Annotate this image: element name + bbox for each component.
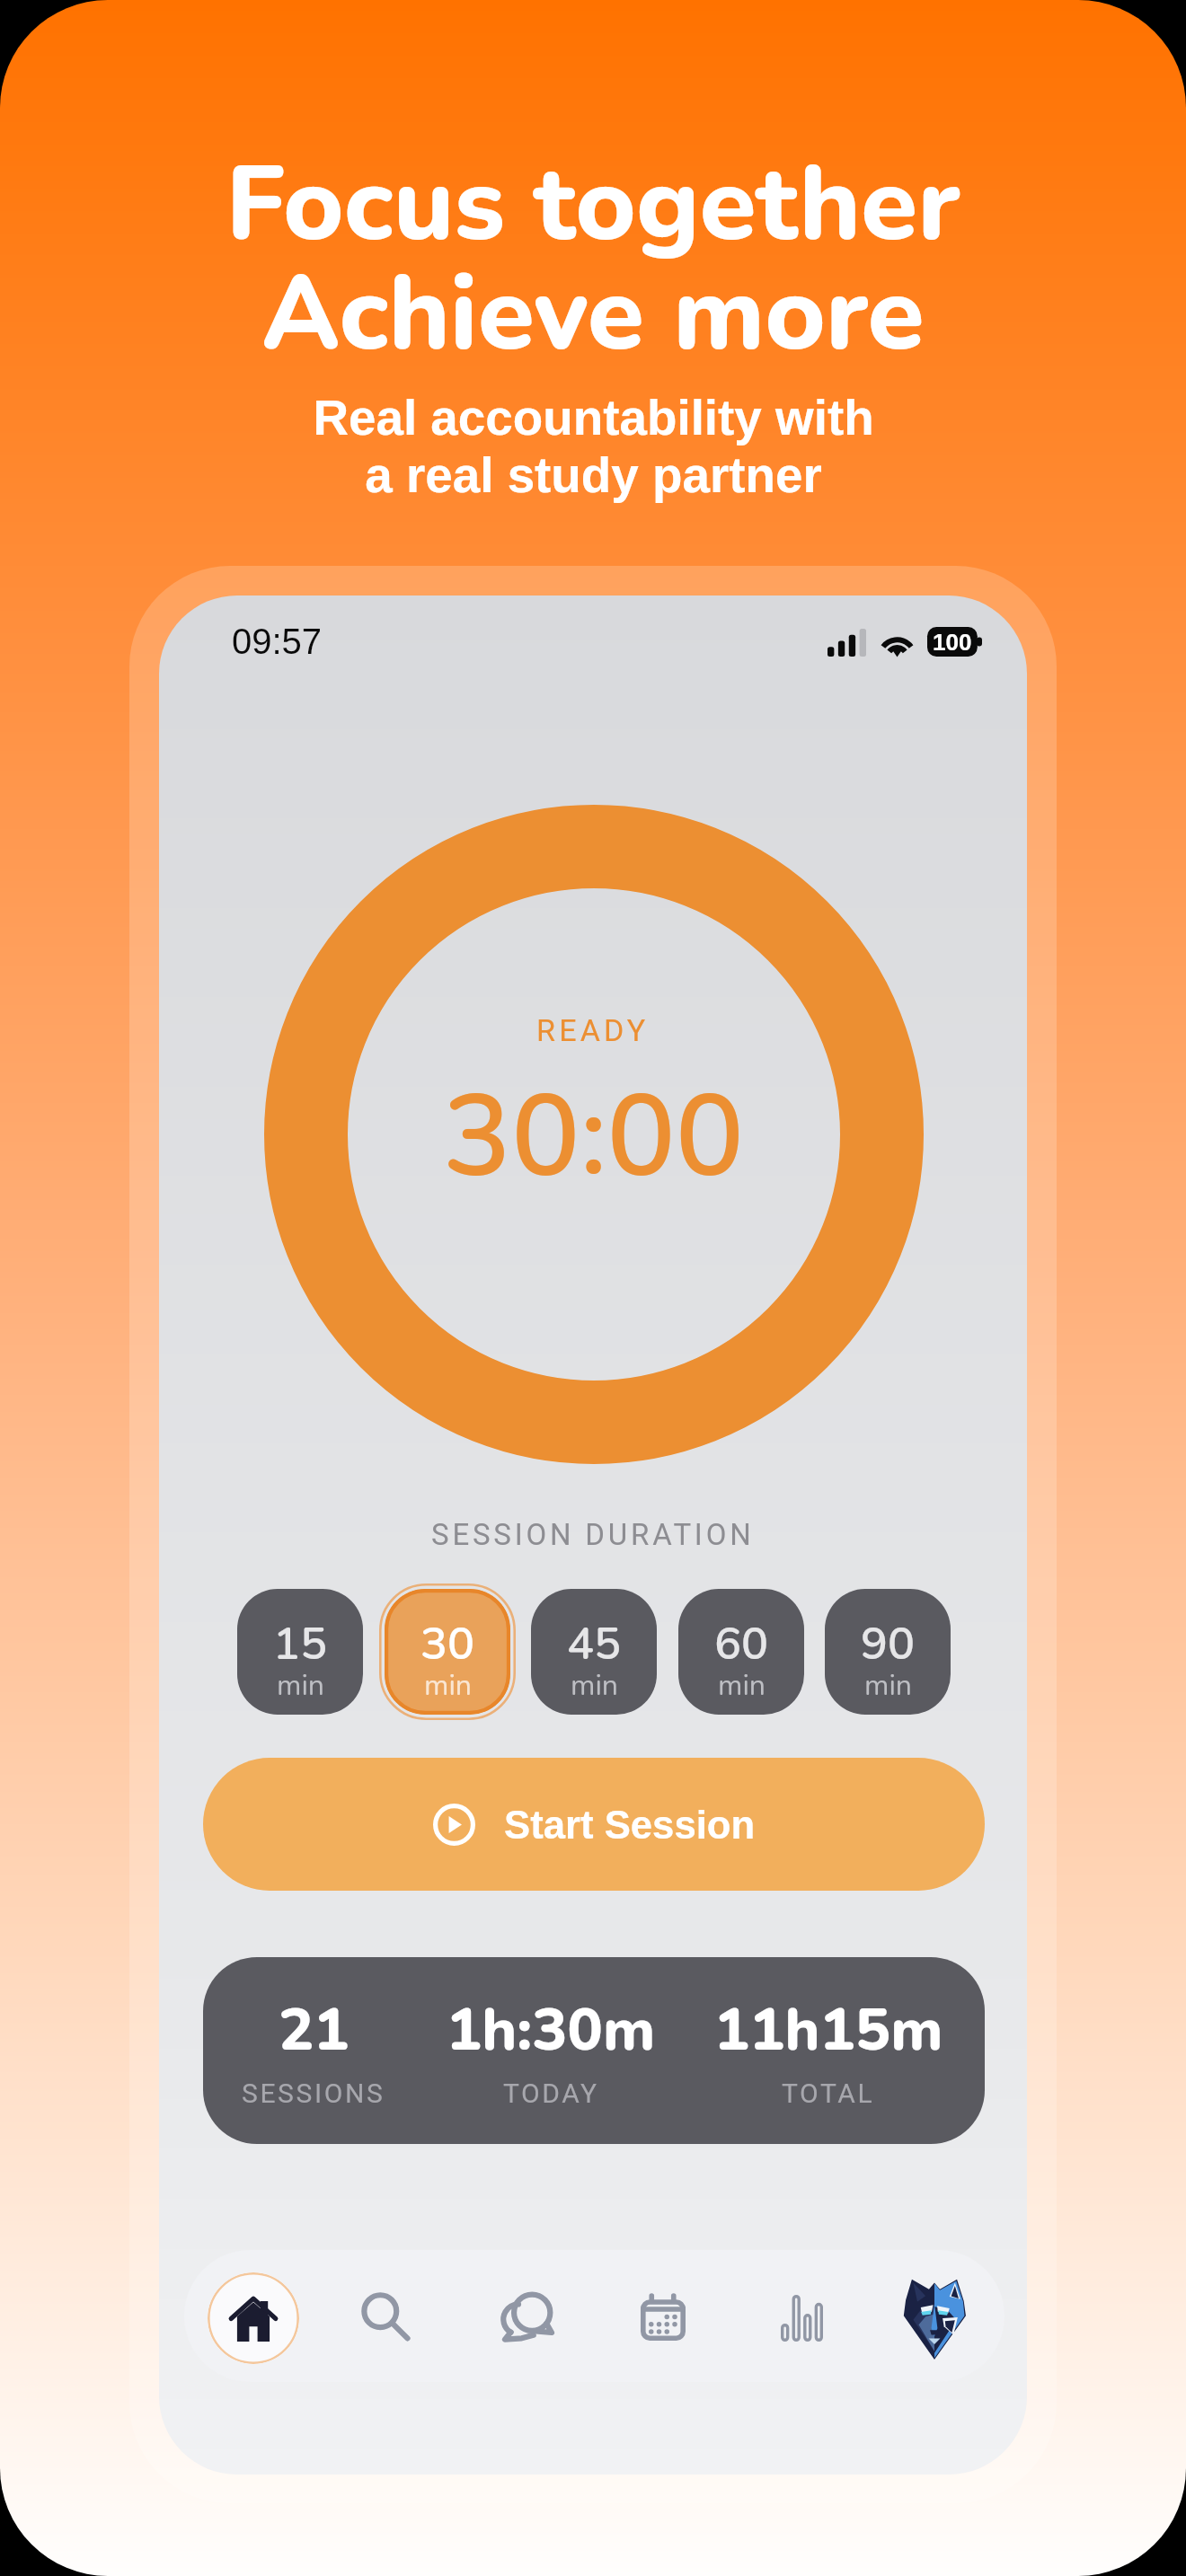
staticText: 30 xyxy=(420,1613,474,1674)
staticText: 11h15m xyxy=(714,1990,943,2070)
staticText: 21 xyxy=(279,1990,350,2070)
button[interactable]: 60 xyxy=(678,1589,804,1715)
staticText: min xyxy=(424,1666,472,1706)
staticText: min xyxy=(864,1666,912,1706)
other: Status bar xyxy=(232,622,323,662)
staticText: min xyxy=(718,1666,766,1706)
button[interactable]: Search xyxy=(341,2272,432,2364)
staticText: 09:57 xyxy=(232,622,323,662)
button[interactable]: Messages xyxy=(481,2272,572,2364)
staticText: Real accountability with a real study pa… xyxy=(313,390,874,502)
button[interactable]: 30 xyxy=(385,1589,510,1715)
button[interactable] xyxy=(203,1957,985,2144)
button[interactable]: Start Session xyxy=(203,1758,985,1891)
button[interactable]: 90 xyxy=(825,1589,951,1715)
staticText: 15 xyxy=(273,1613,327,1674)
staticText: 30:00 xyxy=(443,1059,744,1214)
button[interactable]: Calendar xyxy=(617,2272,709,2364)
staticText: READY xyxy=(536,1012,650,1048)
button[interactable]: Home xyxy=(208,2272,299,2364)
staticText: 100 xyxy=(933,629,972,655)
staticText: 60 xyxy=(714,1613,768,1674)
staticText: 90 xyxy=(861,1613,915,1674)
staticText: 1h:30m xyxy=(447,1990,656,2070)
staticText: TODAY xyxy=(503,2078,599,2109)
staticText: SESSIONS xyxy=(242,2078,385,2109)
button[interactable]: Stats xyxy=(756,2272,847,2364)
staticText: 45 xyxy=(567,1613,621,1674)
staticText: TOTAL xyxy=(782,2078,875,2109)
button[interactable]: Profile xyxy=(889,2272,980,2364)
staticText: min xyxy=(571,1666,618,1706)
staticText: SESSION DURATION xyxy=(431,1517,755,1552)
staticText: Start Session xyxy=(504,1803,756,1847)
button[interactable]: 45 xyxy=(531,1589,657,1715)
button[interactable]: 15 xyxy=(237,1589,363,1715)
staticText: min xyxy=(277,1666,324,1706)
staticText: Focus together Achieve more xyxy=(226,135,960,384)
